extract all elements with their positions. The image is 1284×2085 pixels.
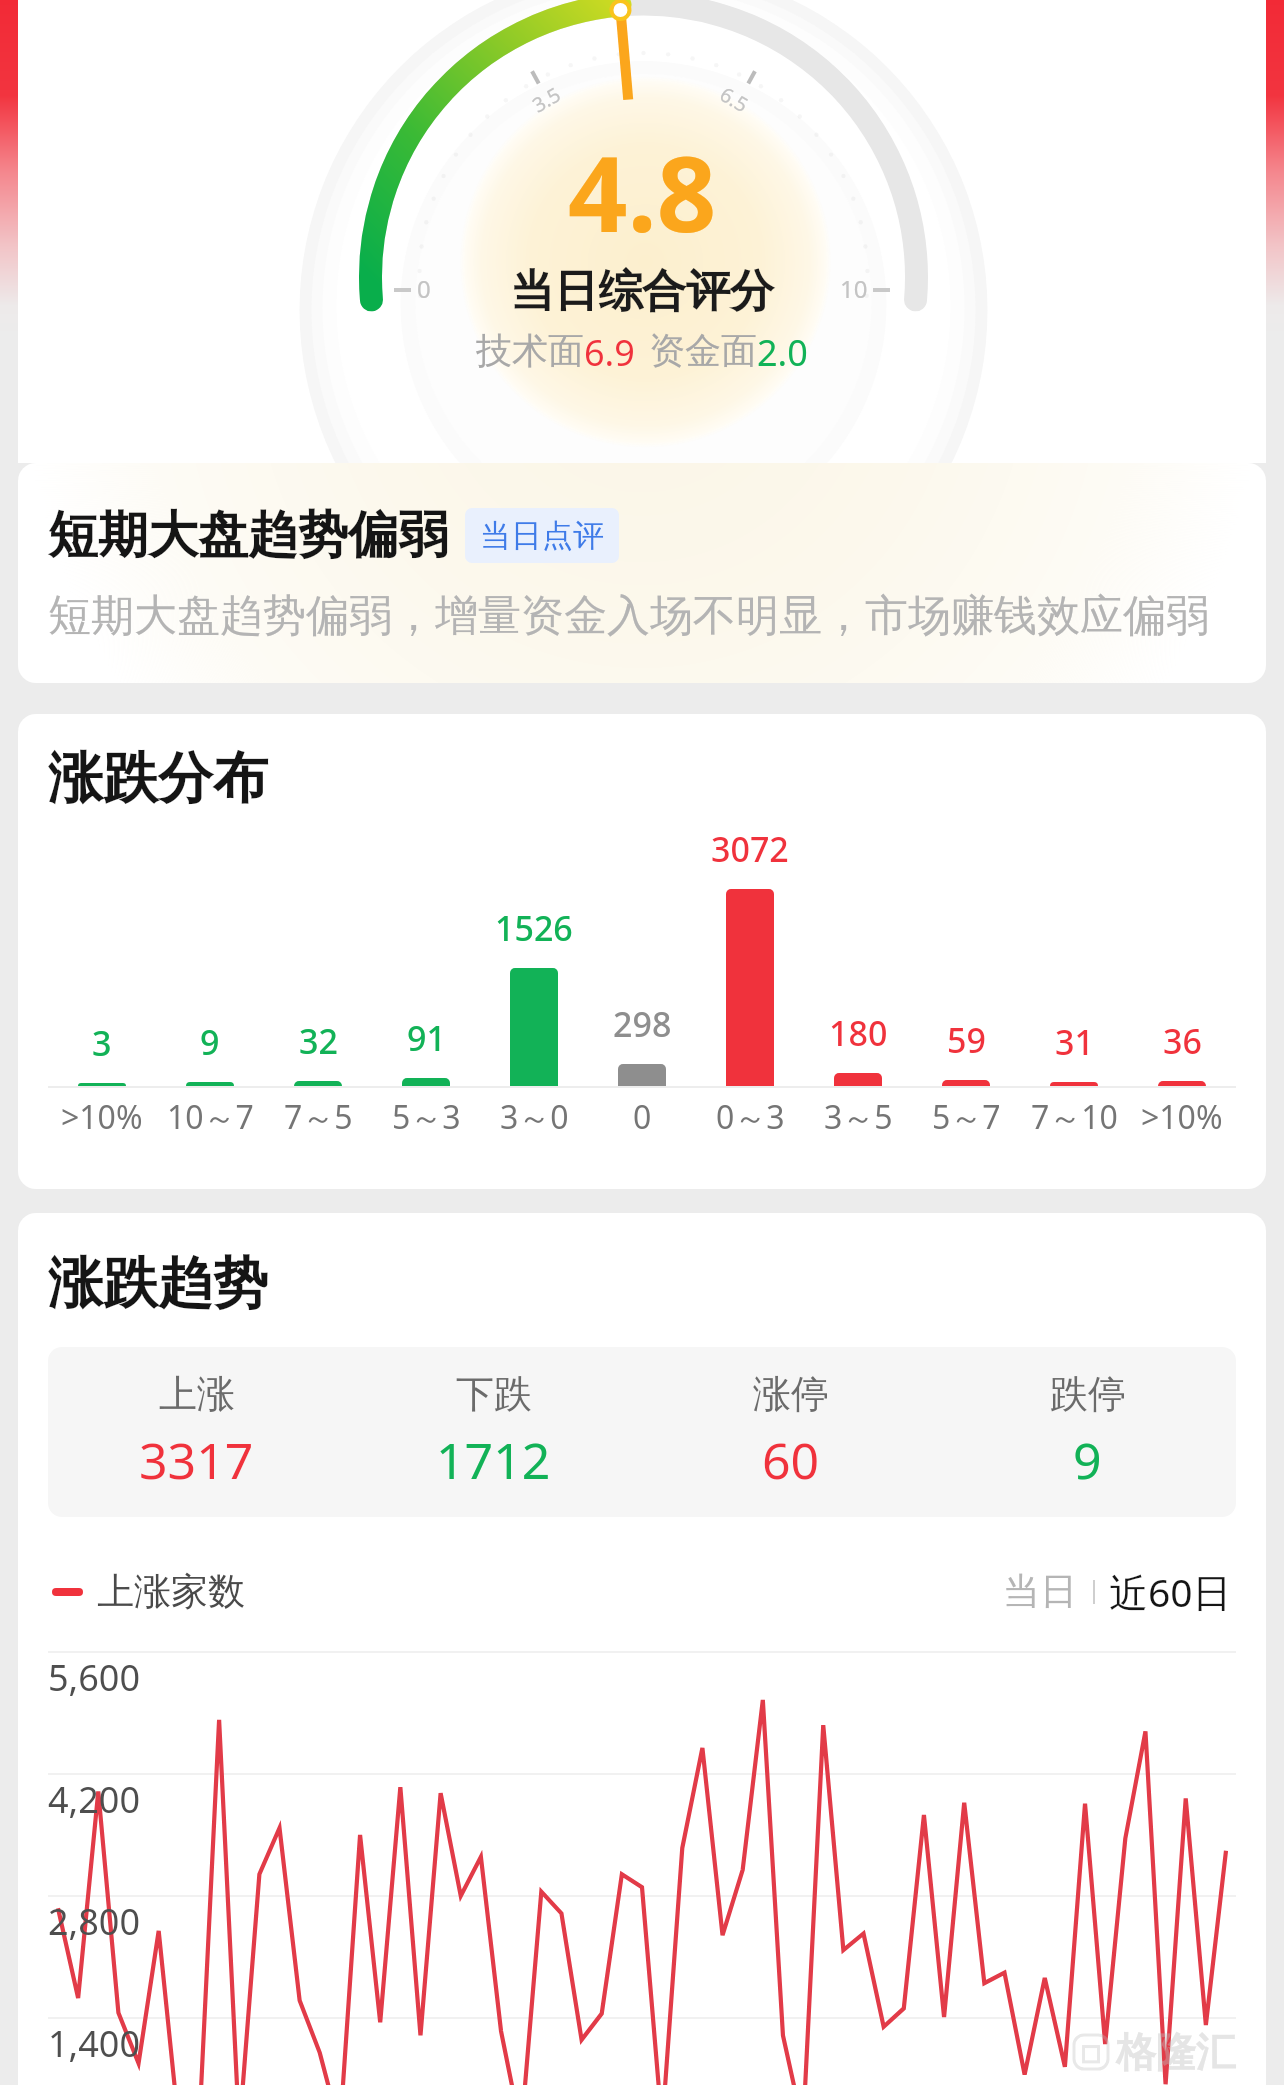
staticText: 1712 bbox=[436, 1426, 551, 1494]
staticText: 60 bbox=[762, 1426, 820, 1494]
staticText: 9 bbox=[200, 1019, 220, 1065]
staticText: 当日点评 bbox=[480, 516, 604, 555]
staticText: 3～5 bbox=[824, 1095, 893, 1139]
staticText: 36 bbox=[1163, 1018, 1202, 1064]
staticText: 3～0 bbox=[500, 1095, 569, 1139]
staticText: 上涨家数 bbox=[97, 1568, 245, 1615]
staticText: 3 bbox=[92, 1020, 112, 1066]
staticText: 0 bbox=[417, 272, 431, 305]
staticText: 4.8 bbox=[568, 121, 717, 263]
staticText: 格隆汇 bbox=[1116, 2027, 1236, 2077]
button[interactable]: 短期大盘趋势偏弱 bbox=[18, 463, 1266, 683]
staticText: 技术面 bbox=[476, 328, 584, 373]
staticText: 3072 bbox=[711, 826, 789, 872]
staticText: 59 bbox=[947, 1017, 986, 1063]
staticText: 5～3 bbox=[392, 1095, 461, 1139]
staticText: 10～7 bbox=[167, 1095, 254, 1139]
staticText: 短期大盘趋势偏弱，增量资金入场不明显，市场赚钱效应偏弱 bbox=[48, 589, 1209, 643]
staticText: 上涨 bbox=[159, 1370, 235, 1418]
staticText: 7～10 bbox=[1031, 1095, 1118, 1139]
staticText: 3317 bbox=[139, 1426, 254, 1494]
staticText: 298 bbox=[613, 1001, 672, 1047]
staticText: 0 bbox=[633, 1095, 652, 1139]
staticText: 当日综合评分 bbox=[510, 264, 774, 319]
button[interactable]: 近60日 bbox=[1105, 1565, 1236, 1618]
staticText: 1,400 bbox=[48, 2019, 141, 2068]
staticText: 近60日 bbox=[1109, 1565, 1232, 1618]
staticText: 6.9 bbox=[584, 328, 635, 377]
staticText: 2,800 bbox=[48, 1897, 141, 1946]
staticText: 涨跌趋势 bbox=[48, 1249, 268, 1318]
staticText: 10 bbox=[840, 272, 868, 305]
staticText: >10% bbox=[1141, 1095, 1223, 1139]
staticText: 180 bbox=[829, 1010, 888, 1056]
staticText: 2.0 bbox=[757, 328, 808, 377]
staticText: 3.5 bbox=[527, 81, 566, 118]
staticText: 短期大盘趋势偏弱 bbox=[48, 504, 448, 567]
staticText: 31 bbox=[1055, 1019, 1094, 1065]
staticText: 32 bbox=[299, 1018, 338, 1064]
button[interactable]: 当日 bbox=[997, 1568, 1083, 1615]
staticText: 涨停 bbox=[753, 1370, 829, 1418]
staticText: 4,200 bbox=[48, 1775, 141, 1824]
staticText: 7～5 bbox=[284, 1095, 353, 1139]
staticText: 资金面 bbox=[649, 328, 757, 373]
staticText: 0～3 bbox=[716, 1095, 785, 1139]
staticText: 1526 bbox=[495, 905, 573, 951]
staticText: 涨跌分布 bbox=[48, 744, 268, 813]
staticText: 6.5 bbox=[715, 81, 754, 118]
staticText: 跌停 bbox=[1050, 1370, 1126, 1418]
staticText: 91 bbox=[407, 1015, 446, 1061]
staticText: 5,600 bbox=[48, 1653, 141, 1702]
staticText: >10% bbox=[61, 1095, 143, 1139]
staticText: 9 bbox=[1073, 1426, 1102, 1494]
staticText: 下跌 bbox=[456, 1370, 532, 1418]
staticText: 5～7 bbox=[932, 1095, 1001, 1139]
staticText: 当日 bbox=[1003, 1568, 1077, 1615]
